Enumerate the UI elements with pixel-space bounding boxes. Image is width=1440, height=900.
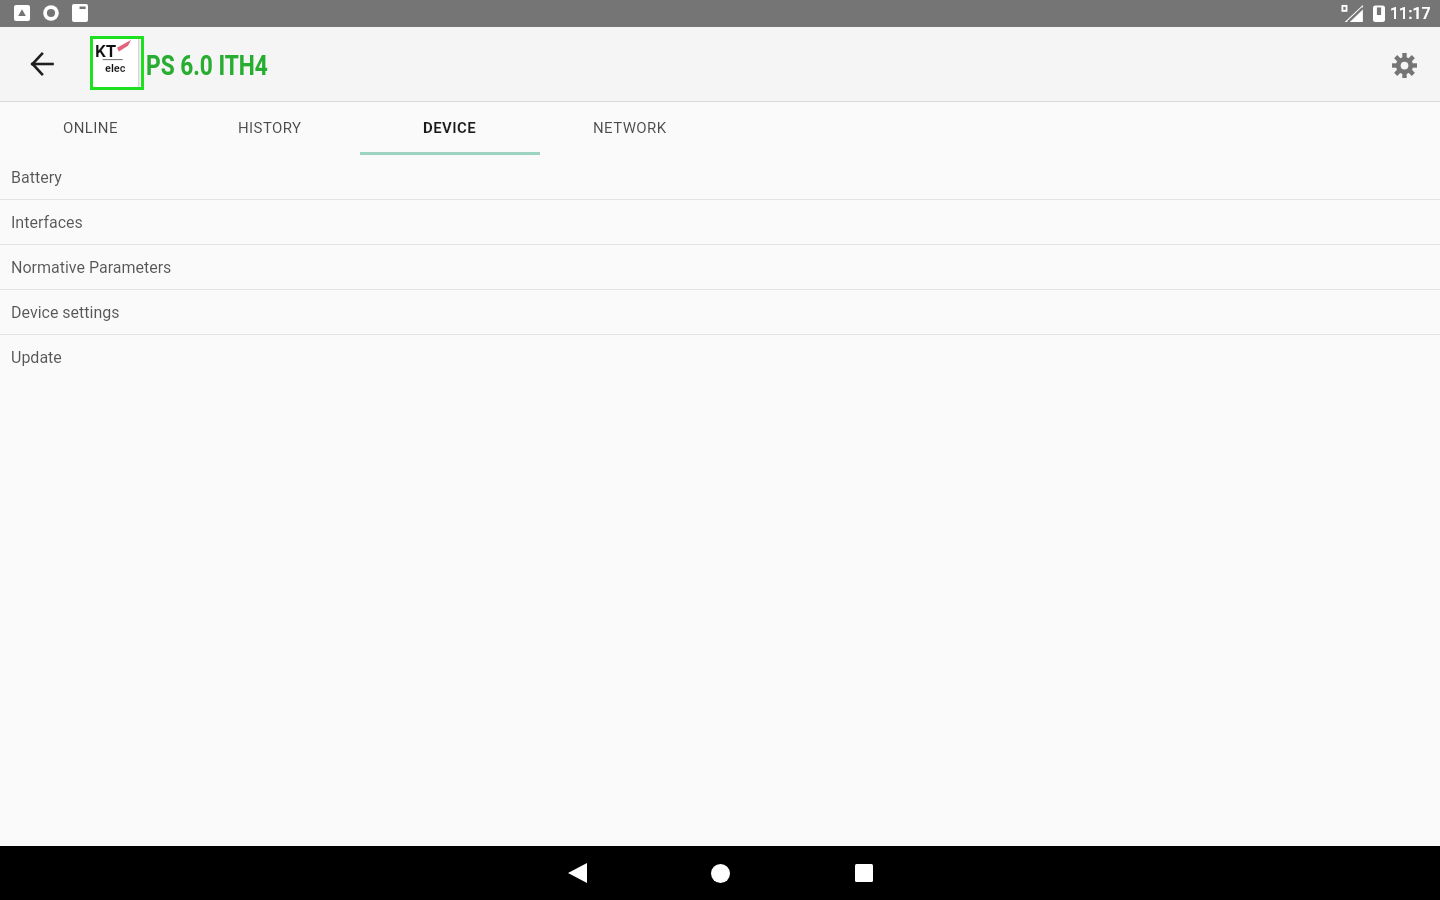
button[interactable]: Normative Parameters: [0, 245, 1440, 290]
staticText: Normative Parameters: [11, 258, 172, 277]
staticText: 11:17: [1390, 4, 1431, 23]
staticText: PS 6.0 ITH4: [146, 50, 269, 82]
button[interactable]: Device settings: [0, 290, 1440, 335]
staticText: KT: [95, 41, 117, 61]
staticText: Interfaces: [11, 213, 83, 232]
button[interactable]: Update: [0, 335, 1440, 380]
staticText: NETWORK: [593, 119, 667, 137]
staticText: Update: [11, 348, 62, 367]
staticText: ONLINE: [63, 119, 118, 137]
staticText: Battery: [11, 168, 62, 187]
button[interactable]: Recent apps: [828, 846, 900, 900]
button[interactable]: Home: [684, 846, 756, 900]
button[interactable]: Back: [18, 40, 66, 88]
button[interactable]: HISTORY: [180, 102, 360, 155]
button[interactable]: NETWORK: [540, 102, 720, 155]
button[interactable]: Battery: [0, 155, 1440, 200]
staticText: DEVICE: [423, 119, 477, 137]
button[interactable]: ONLINE: [0, 102, 180, 155]
button[interactable]: Back: [541, 846, 613, 900]
staticText: elec: [105, 62, 126, 75]
button[interactable]: Interfaces: [0, 200, 1440, 245]
button[interactable]: DEVICE: [360, 102, 540, 155]
staticText: Device settings: [11, 303, 120, 322]
staticText: HISTORY: [238, 119, 302, 137]
button[interactable]: Settings: [1380, 41, 1428, 89]
